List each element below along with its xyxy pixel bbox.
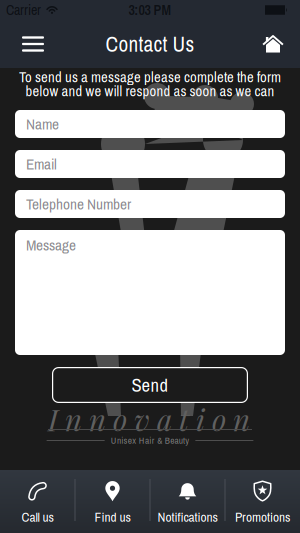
staticText: Notifications: [157, 508, 217, 526]
staticText: Promotions: [235, 508, 290, 526]
staticText: Name: [26, 114, 59, 134]
staticText: Unisex Hair & Beauty: [111, 434, 189, 447]
button[interactable]: Message: [15, 230, 285, 355]
staticText: Message: [26, 235, 76, 255]
staticText: Telephone Number: [26, 194, 131, 214]
staticText: 3:03 PM: [128, 1, 171, 19]
staticText: Call us: [21, 508, 53, 526]
button[interactable]: Call us: [0, 472, 75, 530]
staticText: Email: [26, 154, 57, 174]
button[interactable]: Telephone Number: [15, 190, 285, 218]
staticText: Innovation: [48, 399, 250, 438]
button[interactable]: Name: [15, 110, 285, 138]
staticText: To send us a message please complete the…: [19, 67, 281, 87]
staticText: Contact Us: [105, 30, 194, 58]
button[interactable]: Send: [52, 367, 248, 403]
staticText: below and we will respond as soon as we …: [25, 81, 274, 101]
staticText: Carrier: [6, 1, 41, 19]
button[interactable]: Menu: [16, 27, 50, 61]
button[interactable]: Home: [256, 27, 290, 61]
staticText: Send: [131, 373, 168, 397]
button[interactable]: Email: [15, 150, 285, 178]
staticText: Find us: [94, 508, 130, 526]
button[interactable]: Find us: [75, 472, 150, 530]
button[interactable]: Notifications: [150, 472, 225, 530]
button[interactable]: Promotions: [225, 472, 300, 530]
